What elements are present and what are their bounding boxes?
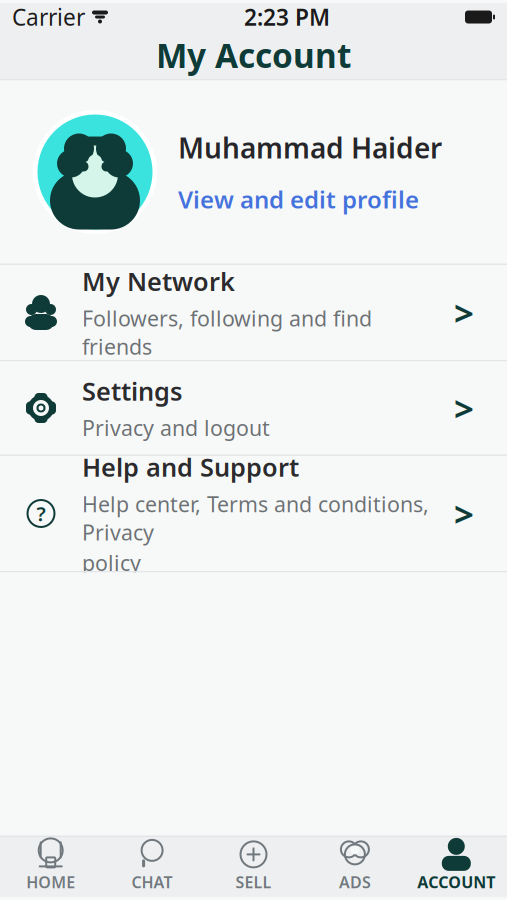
staticText: > bbox=[454, 289, 474, 335]
button[interactable]: ADS bbox=[304, 837, 406, 897]
staticText: Settings bbox=[82, 374, 182, 408]
button[interactable]: My Network bbox=[0, 265, 507, 360]
staticText: My Network bbox=[82, 264, 235, 298]
staticText: Carrier bbox=[12, 2, 85, 32]
button[interactable]: SELL bbox=[203, 837, 304, 897]
button[interactable]: Settings bbox=[0, 361, 507, 454]
button[interactable]: ? bbox=[0, 456, 507, 571]
staticText: ? bbox=[36, 500, 45, 527]
staticText: My Account bbox=[156, 33, 351, 77]
staticText: Muhammad Haider bbox=[178, 129, 442, 166]
staticText: View and edit profile bbox=[178, 183, 419, 215]
staticText: Followers, following and find friends bbox=[82, 304, 372, 361]
staticText: 2:23 PM bbox=[244, 2, 330, 32]
staticText: policy bbox=[82, 548, 141, 577]
staticText: Help and Support bbox=[82, 450, 299, 484]
staticText: ADS bbox=[339, 871, 371, 893]
staticText: SELL bbox=[235, 871, 271, 893]
staticText: ACCOUNT bbox=[417, 871, 495, 893]
staticText: > bbox=[454, 385, 474, 431]
button[interactable]: ACCOUNT bbox=[406, 837, 507, 897]
button[interactable]: Muhammad Haider bbox=[0, 80, 507, 263]
staticText: CHAT bbox=[132, 871, 173, 893]
staticText: Help center, Terms and conditions, Priva… bbox=[82, 490, 429, 546]
staticText: > bbox=[454, 490, 474, 536]
button[interactable]: HOME bbox=[0, 837, 101, 897]
staticText: Privacy and logout bbox=[82, 414, 270, 442]
button[interactable]: CHAT bbox=[101, 837, 203, 897]
staticText: HOME bbox=[26, 871, 75, 893]
